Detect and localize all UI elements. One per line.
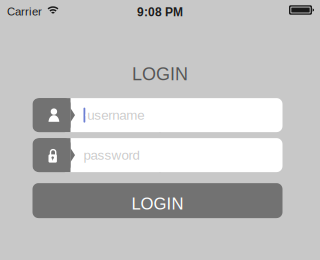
staticText: password bbox=[83, 148, 139, 163]
staticText: username bbox=[87, 108, 144, 123]
staticText: Carrier bbox=[7, 5, 42, 18]
button[interactable]: LOGIN bbox=[32, 183, 282, 218]
staticText: LOGIN bbox=[131, 194, 183, 213]
button[interactable]: username bbox=[32, 98, 282, 132]
button[interactable]: password bbox=[32, 138, 282, 172]
staticText: 9:08 PM bbox=[137, 5, 183, 19]
staticText: LOGIN bbox=[132, 64, 188, 84]
